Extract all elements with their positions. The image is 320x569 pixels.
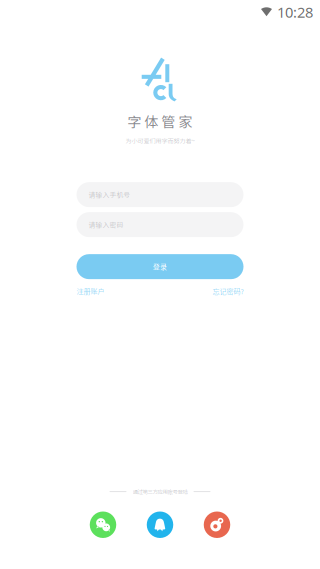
staticText: 注册账户 — [76, 286, 104, 296]
staticText: 登录 — [153, 262, 167, 272]
button[interactable]: WeChat — [90, 511, 116, 538]
button[interactable]: 登录 — [76, 254, 243, 279]
staticText: 字 体 管 家 — [127, 111, 192, 131]
button[interactable]: QQ — [147, 511, 173, 538]
staticText: 10:28 — [277, 2, 313, 22]
staticText: 请输入手机号 — [88, 190, 130, 199]
staticText: 为小可爱们用字而努力着~ — [125, 136, 194, 145]
button[interactable]: 注册账户 — [76, 286, 104, 296]
staticText: 请输入密码 — [88, 220, 123, 229]
button[interactable]: Weibo — [204, 511, 230, 538]
button[interactable]: 忘记密码? — [212, 286, 243, 296]
staticText: 忘记密码? — [212, 286, 243, 296]
staticText: 通过第三方应用账号登陆 — [132, 488, 187, 495]
